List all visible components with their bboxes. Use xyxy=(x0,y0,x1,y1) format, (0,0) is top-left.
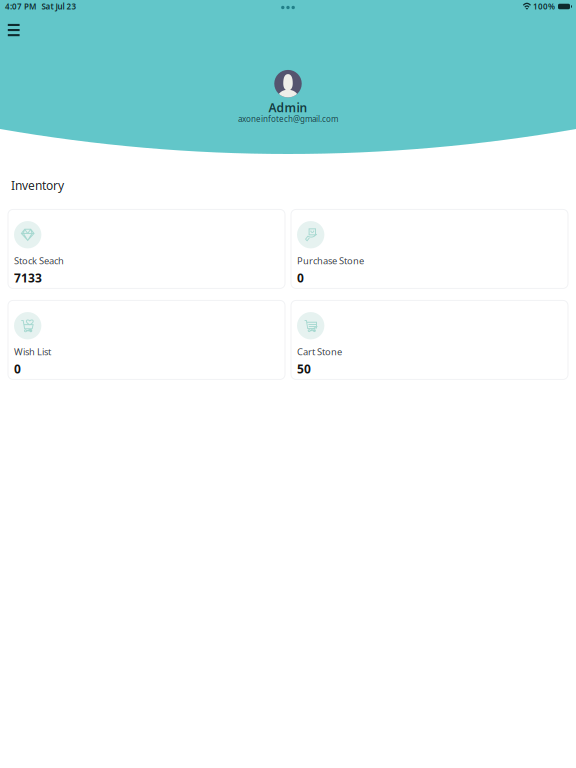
staticText: Inventory xyxy=(11,177,64,193)
staticText: axoneinfotech@gmail.com xyxy=(238,114,338,124)
staticText: 4:07 PM xyxy=(5,1,36,12)
staticText: Sat Jul 23 xyxy=(41,1,76,12)
staticText: Cart Stone xyxy=(297,345,342,358)
staticText: 100% xyxy=(533,1,555,12)
button[interactable]: Stock Seach xyxy=(8,209,285,288)
button[interactable]: Menu xyxy=(0,13,28,42)
button[interactable]: Purchase Stone xyxy=(291,209,568,288)
button[interactable]: Cart Stone xyxy=(291,300,568,379)
staticText: 0 xyxy=(297,270,304,286)
staticText: 0 xyxy=(14,361,21,377)
staticText: Stock Seach xyxy=(14,254,64,267)
staticText: Wish List xyxy=(14,345,51,358)
staticText: 7133 xyxy=(14,270,42,286)
staticText: 50 xyxy=(297,361,311,377)
staticText: Admin xyxy=(268,100,307,116)
button[interactable]: Wish List xyxy=(8,300,285,379)
staticText: Purchase Stone xyxy=(297,254,364,267)
